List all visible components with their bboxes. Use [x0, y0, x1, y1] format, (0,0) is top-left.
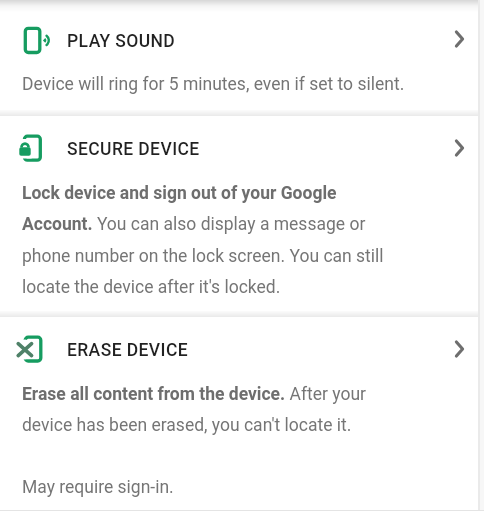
staticText: Lock device and sign out of your Google [22, 183, 337, 204]
staticText: Account. You can also display a message … [22, 214, 366, 235]
staticText: Erase all content from the device. After… [22, 384, 366, 405]
staticText: locate the device after it's locked. [22, 277, 281, 298]
staticText: device has been erased, you can't locate… [22, 415, 352, 436]
button[interactable] [0, 315, 484, 455]
staticText: PLAY SOUND [67, 31, 176, 52]
staticText: May require sign-in. [22, 477, 174, 498]
staticText: Device will ring for 5 minutes, even if … [22, 74, 405, 95]
button[interactable] [0, 115, 484, 311]
staticText: phone number on the lock screen. You can… [22, 246, 384, 267]
staticText: ERASE DEVICE [67, 340, 189, 361]
staticText: SECURE DEVICE [67, 139, 200, 160]
button[interactable] [0, 0, 484, 112]
